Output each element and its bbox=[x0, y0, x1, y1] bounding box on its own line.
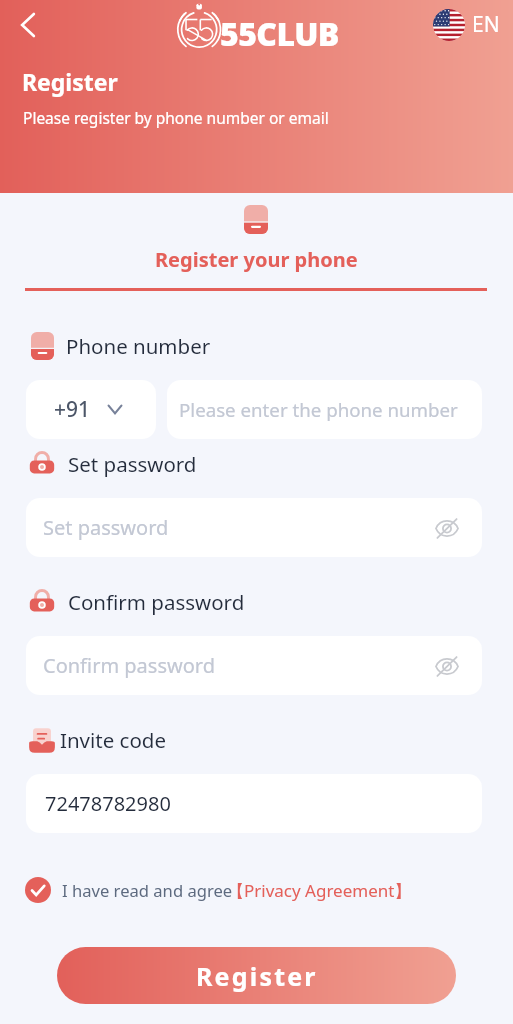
staticText: Confirm password bbox=[68, 588, 245, 616]
button[interactable]: Set password bbox=[26, 498, 482, 557]
button[interactable]: +91 bbox=[26, 380, 156, 439]
button[interactable]: Register bbox=[57, 947, 456, 1004]
button[interactable]: Show password bbox=[431, 650, 463, 682]
staticText: Register your phone bbox=[155, 246, 358, 273]
button[interactable]: Register your phone bbox=[0, 243, 513, 275]
staticText: Please enter the phone number bbox=[179, 397, 458, 422]
button[interactable]: 72478782980 bbox=[26, 774, 482, 833]
staticText: Invite code bbox=[60, 726, 167, 754]
button[interactable]: Confirm password bbox=[26, 636, 482, 695]
staticText: Set password bbox=[68, 450, 197, 478]
staticText: Confirm password bbox=[43, 652, 215, 679]
staticText: 55CLUB bbox=[220, 12, 339, 56]
button[interactable]: Please enter the phone number bbox=[167, 380, 482, 439]
staticText: Register bbox=[196, 959, 318, 993]
staticText: Please register by phone number or email bbox=[23, 107, 329, 128]
staticText: 72478782980 bbox=[45, 790, 171, 817]
staticText: +91 bbox=[54, 395, 91, 424]
staticText: Set password bbox=[43, 514, 169, 541]
staticText: Register bbox=[22, 66, 118, 97]
button[interactable]: Show password bbox=[431, 512, 463, 544]
staticText: 【Privacy Agreement】 bbox=[227, 879, 412, 902]
button[interactable]: I have read and agree bbox=[25, 874, 418, 906]
staticText: I have read and agree bbox=[62, 879, 233, 902]
staticText: EN bbox=[472, 10, 500, 39]
button[interactable]: EN bbox=[433, 9, 500, 41]
button[interactable]: Back bbox=[8, 5, 48, 45]
staticText: Phone number bbox=[66, 332, 211, 360]
